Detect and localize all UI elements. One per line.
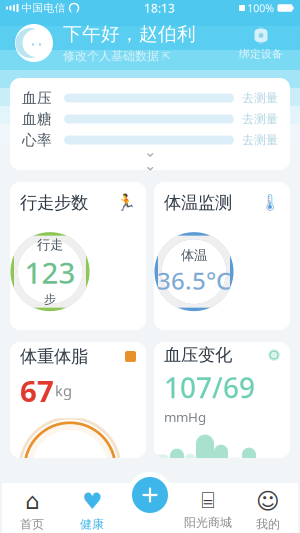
button[interactable]: ☺ xyxy=(238,488,298,532)
staticText: 血压 xyxy=(22,89,52,107)
staticText: 67 xyxy=(20,371,54,410)
button[interactable]: ♥ xyxy=(62,488,122,532)
staticText: 🏃 xyxy=(116,193,136,212)
staticText: 中国电信 xyxy=(21,1,65,14)
staticText: 18:13 xyxy=(144,0,175,16)
staticText: 🌡 xyxy=(260,193,280,212)
staticText: 阳光商城 xyxy=(184,515,232,530)
staticText: ⌄ xyxy=(144,157,156,174)
button[interactable]: ⌂ xyxy=(2,488,62,532)
staticText: mmHg xyxy=(164,408,206,426)
staticText: 血压变化 xyxy=(164,344,232,366)
button[interactable]: 去测量 xyxy=(242,133,278,147)
button[interactable]: 去测量 xyxy=(242,112,278,126)
staticText: ☺ xyxy=(256,488,280,514)
staticText: 去测量 xyxy=(242,133,278,147)
staticText: 步 xyxy=(44,292,56,307)
staticText: kg xyxy=(55,381,72,400)
staticText: 首页 xyxy=(20,517,44,532)
staticText: 我的 xyxy=(256,517,280,532)
staticText: 行走 xyxy=(37,237,63,253)
staticText: ⌄ xyxy=(144,143,156,160)
staticText: ⇱ xyxy=(162,50,171,62)
staticText: 体温监测 xyxy=(164,192,232,213)
staticText: 体重体脂 xyxy=(20,346,88,367)
staticText: 心率 xyxy=(22,131,52,149)
staticText: 绑定设备 xyxy=(239,47,283,60)
button[interactable]: 绑定设备 xyxy=(236,25,286,60)
button[interactable]: 去测量 xyxy=(242,91,278,105)
staticText: 健康 xyxy=(80,517,104,532)
staticText: 修改个人基础数据 xyxy=(63,49,159,63)
staticText: ⌸ xyxy=(201,490,215,512)
staticText: 下午好，赵伯利 xyxy=(63,23,196,46)
staticText: 36.5°C xyxy=(157,264,231,296)
button[interactable]: ⌸ xyxy=(178,488,238,532)
staticText: 123 xyxy=(24,253,75,292)
staticText: 去测量 xyxy=(242,91,278,105)
button[interactable]: 展开更多 xyxy=(130,150,170,166)
staticText: ⌂ xyxy=(25,488,39,514)
staticText: 100% xyxy=(247,1,274,15)
staticText: 去测量 xyxy=(242,112,278,126)
staticText: 血糖 xyxy=(22,110,52,128)
staticText: ♥ xyxy=(82,488,102,514)
staticText: 行走步数 xyxy=(20,192,88,213)
staticText: 107/69 xyxy=(164,369,255,406)
button[interactable]: 修改个人基础数据 xyxy=(63,49,171,63)
staticText: 体温 xyxy=(181,247,207,263)
